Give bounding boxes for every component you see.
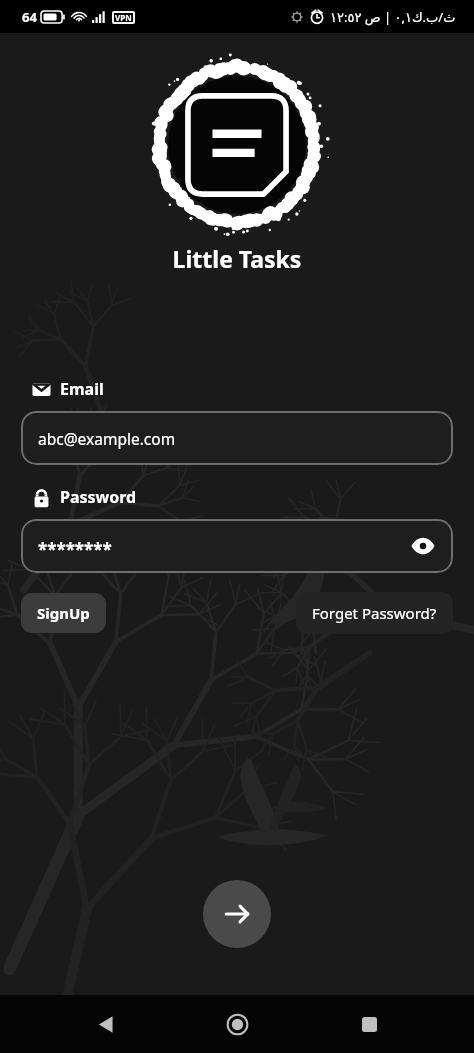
button[interactable]: Forget Password? bbox=[296, 592, 453, 634]
button[interactable]: ******** bbox=[21, 519, 453, 573]
button[interactable]: SignUp bbox=[21, 593, 106, 633]
staticText: Forget Password? bbox=[312, 603, 437, 623]
button[interactable]: Back bbox=[80, 998, 132, 1050]
staticText: SignUp bbox=[37, 603, 90, 623]
staticText: ث/ب.ك٠,١ | ص ١٢:٥٢ bbox=[330, 8, 456, 26]
staticText: ******** bbox=[38, 538, 112, 561]
staticText: VPN bbox=[115, 12, 132, 23]
staticText: Email bbox=[60, 378, 104, 400]
staticText: Password bbox=[60, 486, 137, 508]
button[interactable]: Home bbox=[211, 998, 263, 1050]
staticText: Little Tasks bbox=[0, 243, 474, 274]
button[interactable]: Show password bbox=[405, 528, 441, 564]
button[interactable]: Sign in bbox=[203, 880, 271, 948]
staticText: abc@example.com bbox=[38, 428, 176, 449]
staticText: 64 bbox=[22, 8, 37, 26]
button[interactable]: abc@example.com bbox=[21, 411, 453, 465]
button[interactable]: Recents bbox=[343, 998, 395, 1050]
